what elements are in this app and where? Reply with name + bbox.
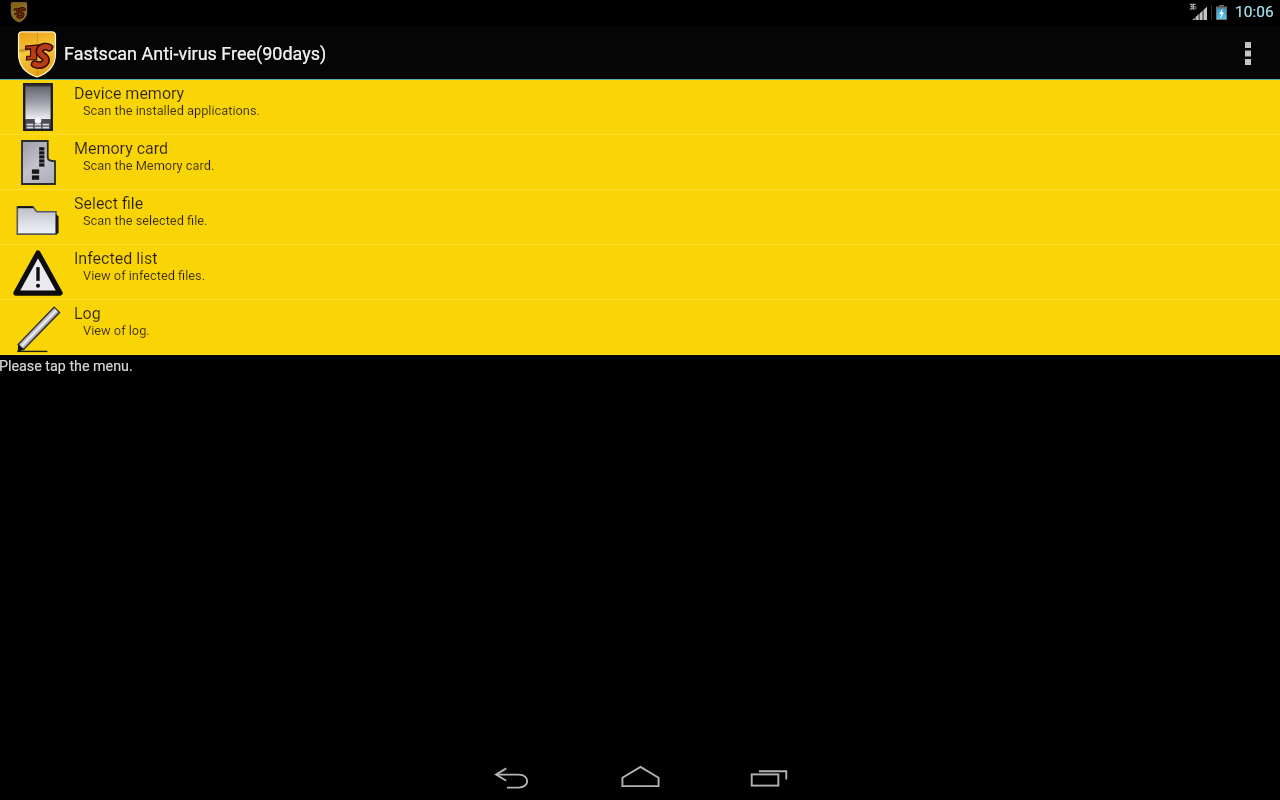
staticText: Scan the Memory card. [83,158,215,173]
button[interactable]: Recent apps [732,738,804,800]
button[interactable]: Select file [0,190,1280,244]
staticText: Please tap the menu. [0,358,133,375]
staticText: Fastscan Anti-virus Free(90days) [64,43,327,64]
button[interactable]: Log [0,300,1280,354]
staticText: Infected list [74,249,158,268]
staticText: View of infected files. [83,268,206,283]
button[interactable]: Back [476,738,548,800]
button[interactable]: Fastscan Anti-virus Free(90days) [0,26,345,79]
staticText: View of log. [83,323,150,338]
button[interactable]: Infected list [0,245,1280,299]
staticText: Select file [74,194,144,213]
staticText: Memory card [74,139,169,158]
staticText: Scan the selected file. [83,213,208,228]
button[interactable]: More options [1225,26,1271,79]
staticText: 10:06 [1235,3,1274,21]
button[interactable]: Home [604,738,676,800]
staticText: Scan the installed applications. [83,103,260,118]
button[interactable]: Device memory [0,80,1280,134]
staticText: Log [74,304,101,323]
staticText: Device memory [74,84,185,103]
button[interactable]: Memory card [0,135,1280,189]
